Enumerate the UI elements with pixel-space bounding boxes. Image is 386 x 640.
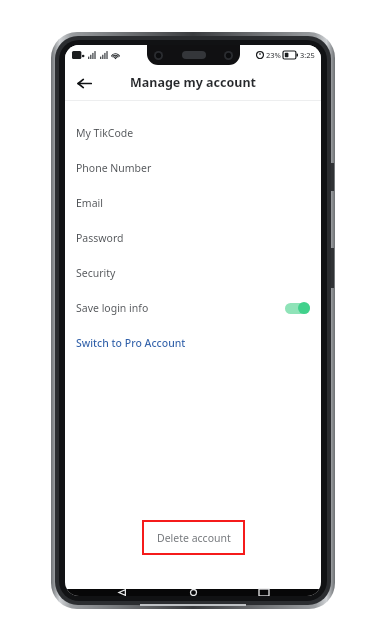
button[interactable]: Switch to Pro Account: [65, 325, 321, 360]
staticText: Phone Number: [76, 161, 152, 175]
staticText: Security: [76, 266, 116, 280]
button[interactable]: Phone Number: [65, 150, 321, 185]
button[interactable]: Recent apps: [253, 589, 275, 596]
button[interactable]: My TikCode: [65, 115, 321, 150]
button[interactable]: Email: [65, 185, 321, 220]
staticText: My TikCode: [76, 126, 134, 140]
staticText: 23%: [266, 50, 281, 60]
button[interactable]: Save login info: [65, 290, 321, 325]
staticText: Password: [76, 231, 124, 245]
button[interactable]: Back: [111, 589, 133, 596]
staticText: Switch to Pro Account: [76, 336, 186, 350]
staticText: Save login info: [76, 301, 149, 315]
button[interactable]: Home: [182, 589, 204, 596]
button[interactable]: Password: [65, 220, 321, 255]
staticText: Delete account: [157, 531, 231, 545]
button[interactable]: Security: [65, 255, 321, 290]
staticText: 3:25: [300, 50, 315, 60]
button[interactable]: Back: [69, 68, 99, 98]
button[interactable]: Delete account: [142, 520, 245, 555]
staticText: Email: [76, 196, 103, 210]
staticText: Manage my account: [130, 74, 256, 91]
